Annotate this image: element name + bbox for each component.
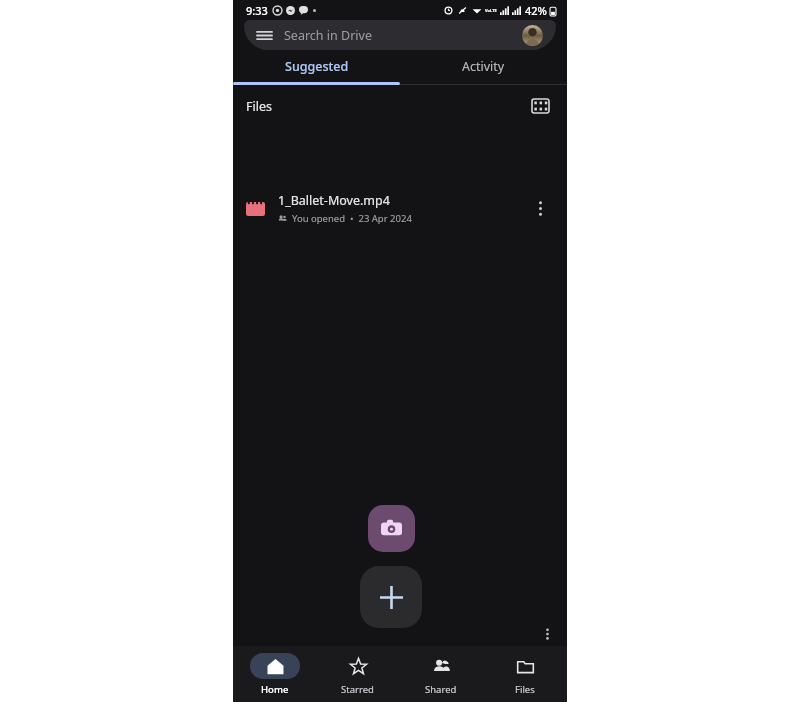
- staticText: Search in Drive: [284, 27, 372, 44]
- button[interactable]: Create new: [360, 566, 422, 628]
- button[interactable]: Switch to grid view: [526, 92, 554, 120]
- button[interactable]: 1_Ballet-Move.mp4: [233, 183, 567, 233]
- button[interactable]: Files: [483, 646, 567, 702]
- button[interactable]: Shared: [399, 646, 483, 702]
- button[interactable]: Home: [233, 646, 316, 702]
- staticText: Activity: [462, 58, 505, 75]
- button[interactable]: Starred: [316, 646, 399, 702]
- other: Open navigation menu: [257, 28, 272, 43]
- button[interactable]: Scan with camera: [368, 505, 415, 552]
- staticText: Files: [515, 683, 535, 696]
- staticText: 42%: [525, 3, 547, 18]
- button[interactable]: Account: [522, 25, 543, 46]
- staticText: Starred: [341, 683, 374, 696]
- button[interactable]: Open navigation menu: [244, 20, 556, 50]
- button[interactable]: Activity: [400, 50, 567, 82]
- staticText: 9:33: [246, 3, 268, 18]
- staticText: Suggested: [285, 58, 349, 75]
- staticText: 1_Ballet-Move.mp4: [278, 192, 390, 209]
- button[interactable]: More options for 1_Ballet-Move.mp4: [526, 194, 554, 222]
- staticText: Files: [246, 98, 272, 115]
- button[interactable]: Suggested: [233, 50, 400, 82]
- staticText: Home: [261, 683, 289, 696]
- staticText: VoLTE: [485, 8, 497, 13]
- staticText: Shared: [425, 683, 457, 696]
- staticText: You opened • 23 Apr 2024: [292, 212, 412, 225]
